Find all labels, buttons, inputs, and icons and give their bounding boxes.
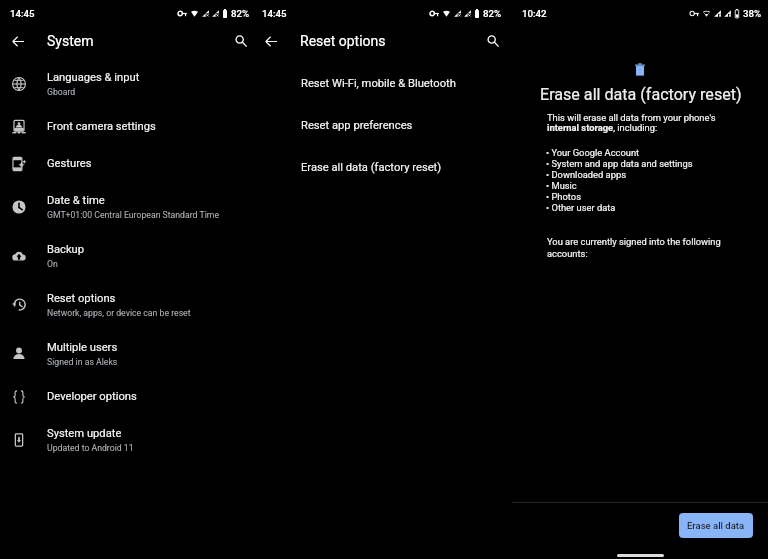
staticText: System	[47, 33, 94, 49]
staticText: Date & time	[47, 194, 105, 207]
staticText: Network, apps, or device can be reset	[47, 308, 191, 318]
staticText: Gestures	[47, 157, 92, 170]
button[interactable]: Reset Wi-Fi, mobile & Bluetooth	[256, 62, 512, 104]
staticText: You are currently signed into the follow…	[547, 236, 738, 260]
button[interactable]: Date & time	[0, 182, 256, 231]
staticText: Multiple users	[47, 341, 118, 354]
staticText: Reset options	[47, 292, 116, 305]
staticText: Front camera settings	[47, 120, 156, 133]
button[interactable]: Developer options	[0, 378, 256, 415]
button[interactable]: Gestures	[0, 145, 256, 182]
staticText: Gboard	[47, 87, 76, 97]
staticText: 82%	[483, 8, 502, 19]
staticText: 14:45	[262, 8, 287, 19]
button[interactable]: Reset options	[0, 280, 256, 329]
staticText: This will erase all data from your phone…	[547, 112, 716, 133]
staticText: Languages & input	[47, 71, 140, 84]
button[interactable]: Languages & input	[0, 59, 256, 108]
button[interactable]: Search	[228, 28, 254, 54]
staticText: Updated to Android 11	[47, 443, 134, 453]
button[interactable]: Reset app preferences	[256, 104, 512, 146]
staticText: 38%	[743, 8, 762, 19]
button[interactable]: Erase all data	[679, 513, 753, 538]
staticText: Erase all data (factory reset)	[301, 161, 442, 174]
staticText: Erase all data (factory reset)	[540, 85, 742, 104]
button[interactable]: Erase all data (factory reset)	[256, 146, 512, 188]
staticText: System update	[47, 427, 122, 440]
staticText: Erase all data	[687, 520, 745, 531]
staticText: 82%	[231, 8, 250, 19]
button[interactable]: Search	[480, 28, 506, 54]
staticText: Reset options	[300, 33, 386, 49]
staticText: 10:42	[522, 8, 547, 19]
staticText: • Your Google Account • System and app d…	[546, 147, 693, 213]
staticText: 14:45	[10, 8, 35, 19]
staticText: Backup	[47, 243, 85, 256]
button[interactable]: Multiple users	[0, 329, 256, 378]
staticText: GMT+01:00 Central European Standard Time	[47, 210, 219, 220]
button[interactable]: Back	[5, 28, 31, 54]
button[interactable]: Back	[258, 28, 284, 54]
button[interactable]: System update	[0, 415, 256, 464]
staticText: Reset app preferences	[301, 119, 413, 132]
button[interactable]: Front camera settings	[0, 108, 256, 145]
button[interactable]: Backup	[0, 231, 256, 280]
staticText: Developer options	[47, 390, 137, 403]
staticText: Signed in as Aleks	[47, 357, 118, 367]
staticText: Reset Wi-Fi, mobile & Bluetooth	[301, 77, 456, 90]
staticText: On	[47, 259, 58, 269]
